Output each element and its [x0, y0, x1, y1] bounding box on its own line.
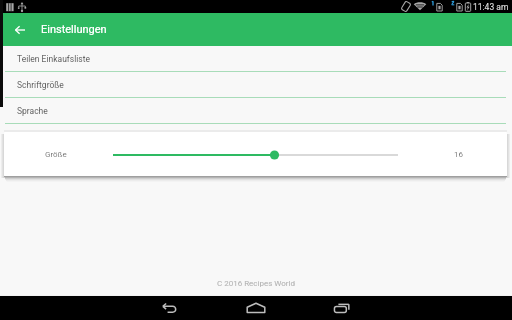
- staticText: Größe: [45, 150, 67, 159]
- button[interactable]: Schriftgröße: [0, 72, 512, 98]
- button[interactable]: Home: [233, 295, 279, 320]
- button[interactable]: Back: [146, 295, 192, 320]
- staticText: Schriftgröße: [17, 80, 64, 90]
- button[interactable]: Recent apps: [319, 295, 365, 320]
- button[interactable]: Teilen Einkaufsliste: [0, 46, 512, 72]
- staticText: Sprache: [17, 106, 48, 116]
- staticText: 16: [454, 150, 463, 159]
- staticText: Einstellungen: [41, 23, 107, 36]
- staticText: C 2016 Recipes World: [217, 279, 296, 288]
- staticText: 11:43 am: [473, 2, 509, 12]
- button[interactable]: Back: [0, 13, 39, 46]
- staticText: Teilen Einkaufsliste: [17, 54, 90, 64]
- button[interactable]: Sprache: [0, 98, 512, 124]
